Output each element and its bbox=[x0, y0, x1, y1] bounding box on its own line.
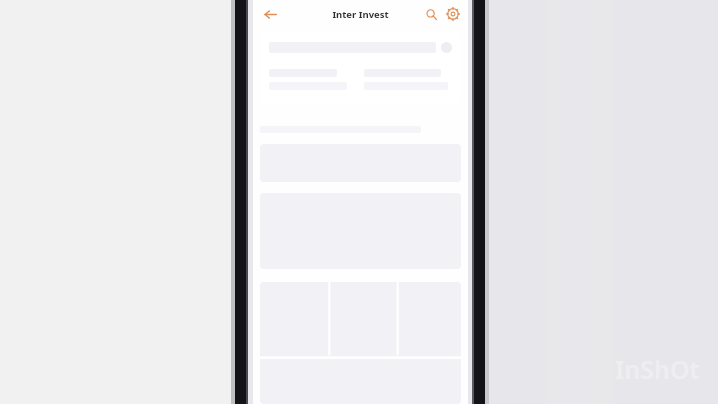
button[interactable]: Settings bbox=[443, 4, 463, 24]
button[interactable]: Search bbox=[421, 4, 441, 24]
staticText: Inter Invest bbox=[332, 8, 389, 21]
button[interactable]: Back bbox=[259, 3, 281, 25]
button[interactable] bbox=[260, 33, 461, 104]
